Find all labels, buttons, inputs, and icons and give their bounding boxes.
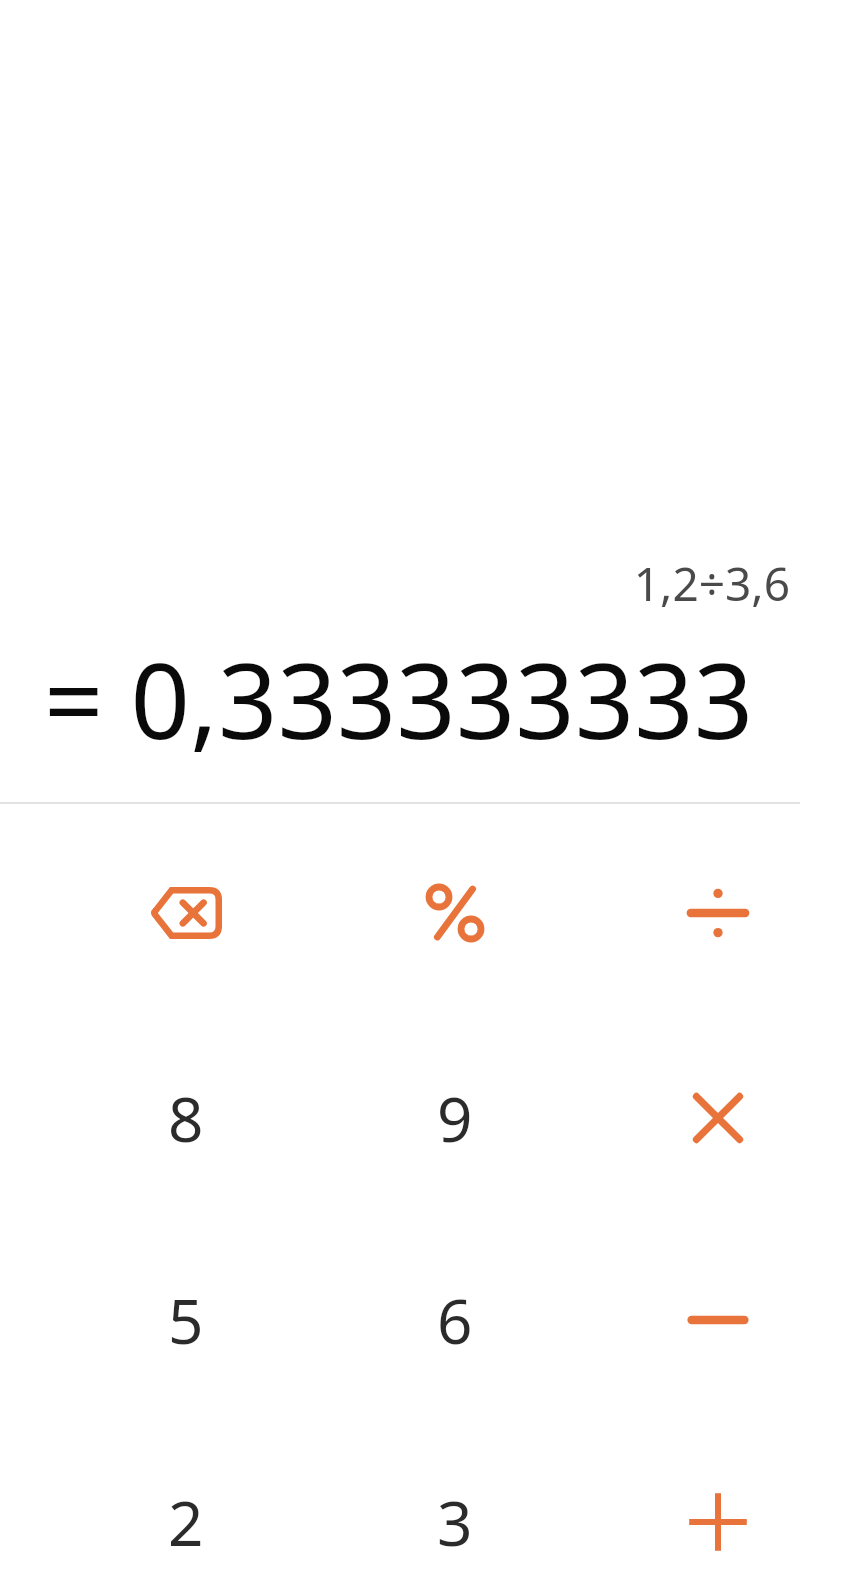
button[interactable]: 8	[71, 1023, 301, 1213]
button[interactable]: Minus	[603, 1225, 833, 1415]
staticText: 8	[168, 1076, 204, 1160]
button[interactable]: 2	[71, 1427, 301, 1596]
button[interactable]: Multiply	[603, 1023, 833, 1213]
button[interactable]: 6	[340, 1225, 570, 1415]
staticText: 5	[168, 1278, 204, 1362]
staticText: 3	[437, 1480, 473, 1564]
button[interactable]: 3	[340, 1427, 570, 1596]
staticText: 1,2÷3,6	[633, 552, 790, 615]
button[interactable]: Backspace	[71, 818, 301, 1008]
button[interactable]: Divide	[603, 818, 833, 1008]
button[interactable]: 5	[71, 1225, 301, 1415]
button[interactable]: Percent	[340, 818, 570, 1008]
staticText: 9	[437, 1076, 473, 1160]
button[interactable]: 9	[340, 1023, 570, 1213]
staticText: 2	[168, 1480, 204, 1564]
button[interactable]: Plus	[603, 1427, 833, 1596]
staticText: 6	[437, 1278, 473, 1362]
staticText: = 0,333333333	[44, 628, 754, 770]
